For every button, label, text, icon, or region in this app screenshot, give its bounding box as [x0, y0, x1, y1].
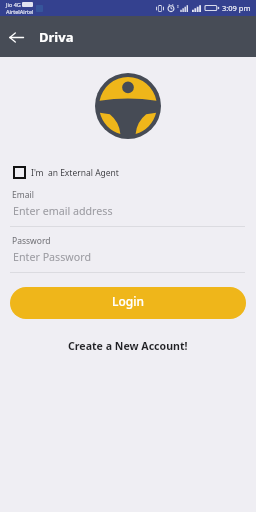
staticText: Login	[112, 293, 144, 309]
staticText: Jio 4G	[6, 1, 21, 8]
button[interactable]: Login	[10, 287, 246, 319]
staticText: Email	[12, 189, 34, 201]
staticText: I'm an External Agent	[31, 167, 119, 179]
staticText: Driva	[39, 28, 74, 46]
button[interactable]: Create a New Account!	[62, 335, 194, 357]
button[interactable]: Back	[5, 26, 27, 48]
staticText: Enter Password	[13, 250, 91, 265]
staticText: 3:09 pm	[222, 3, 251, 13]
button[interactable]: I'm an External Agent	[0, 162, 256, 183]
staticText: Password	[12, 235, 51, 247]
staticText: AirtelAirtel	[6, 8, 34, 15]
staticText: Enter email address	[13, 204, 113, 219]
